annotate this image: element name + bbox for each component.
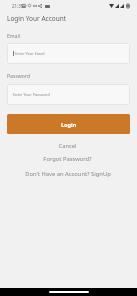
staticText: Enter Your Password <box>13 92 50 97</box>
button[interactable]: Login <box>7 114 130 134</box>
button[interactable]: Don't Have an Account? SignUp <box>0 170 136 178</box>
button[interactable]: Enter Your Email <box>7 43 130 64</box>
staticText: Login <box>61 121 77 128</box>
staticText: Forgot Password? <box>43 155 92 163</box>
button[interactable]: Forgot Password? <box>0 155 136 163</box>
button[interactable]: Cancel <box>0 142 136 150</box>
button[interactable]: Enter Your Password <box>7 84 130 105</box>
staticText: 21:35 <box>12 3 24 9</box>
staticText: Email <box>7 33 21 40</box>
staticText: Password <box>7 73 31 80</box>
staticText: Login Your Account <box>7 14 67 23</box>
staticText: Cancel <box>58 142 77 150</box>
staticText: Don't Have an Account? SignUp <box>25 170 111 178</box>
staticText: Enter Your Email <box>15 51 45 56</box>
